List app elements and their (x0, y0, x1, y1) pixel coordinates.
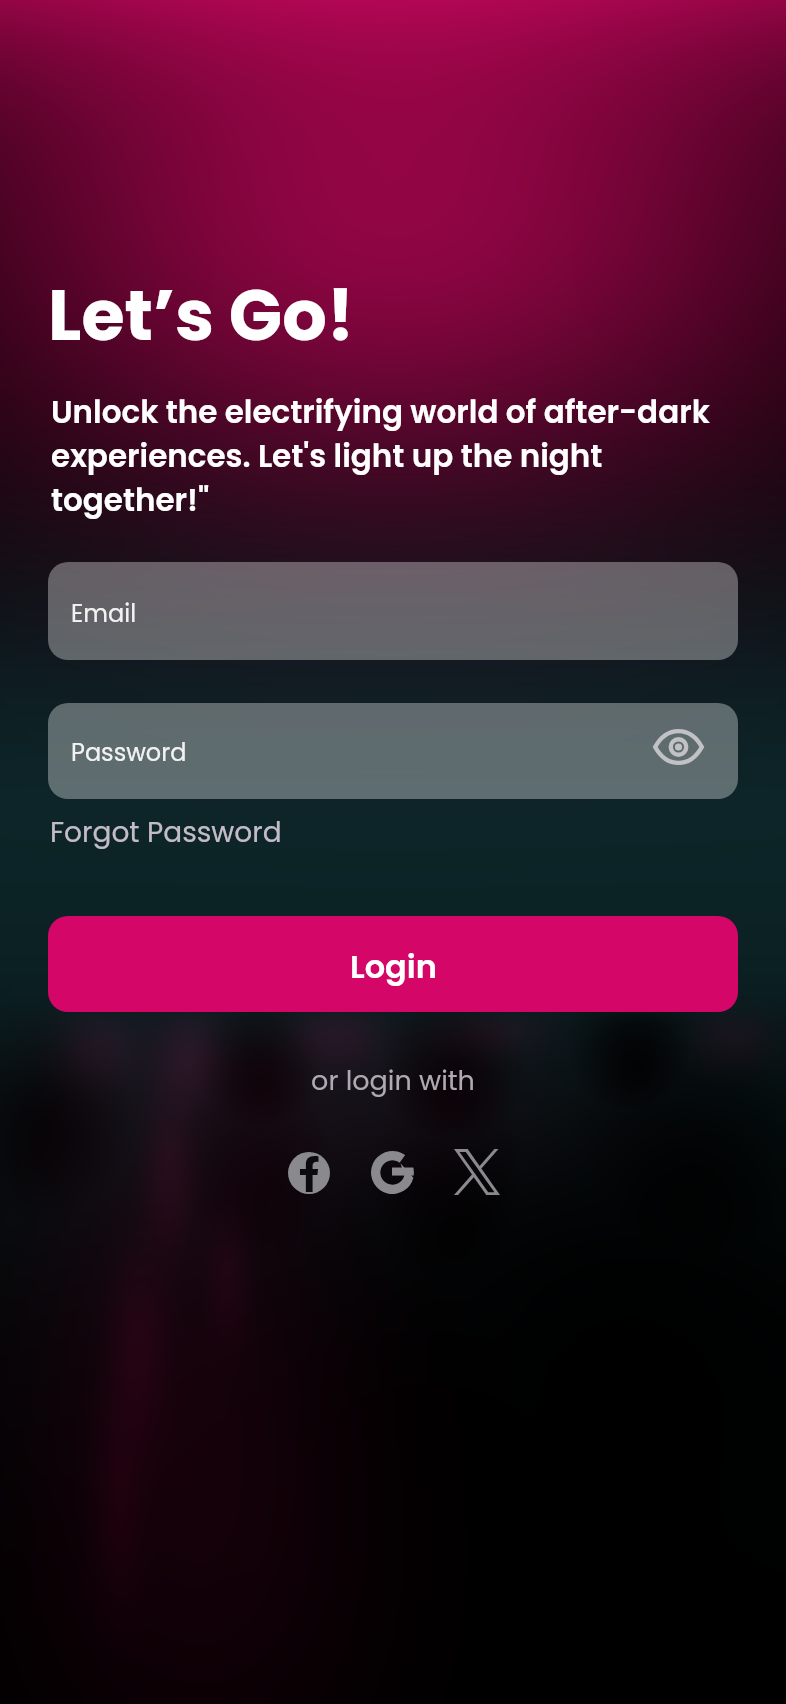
staticText: Login (350, 944, 437, 989)
button[interactable]: Login (48, 916, 738, 1012)
staticText: Password (71, 736, 187, 770)
button[interactable]: Login with X (447, 1142, 507, 1202)
button[interactable]: Login with Google (362, 1142, 422, 1202)
button[interactable]: Email (48, 562, 738, 660)
staticText: or login with (0, 1062, 786, 1704)
button[interactable]: Password (48, 703, 738, 799)
staticText: Email (71, 597, 137, 631)
button[interactable]: Forgot Password (50, 813, 282, 852)
staticText: Let’s Go! (48, 266, 355, 364)
button[interactable]: Login with Facebook (279, 1143, 339, 1203)
staticText: Forgot Password (50, 813, 282, 852)
staticText: Unlock the electrifying world of after-d… (51, 390, 723, 521)
button[interactable]: Show password (648, 721, 709, 773)
